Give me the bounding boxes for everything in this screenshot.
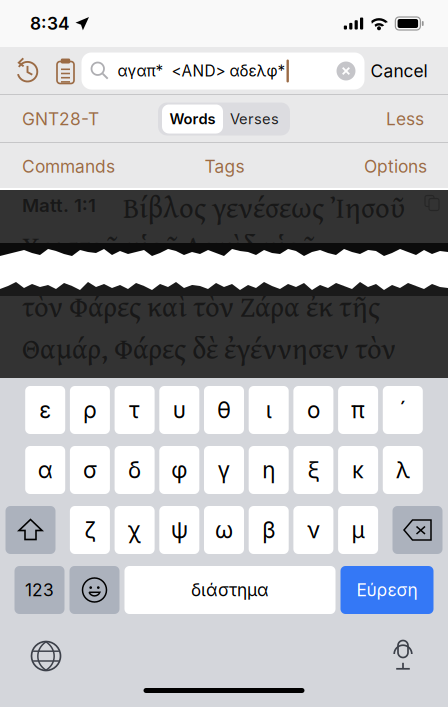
button[interactable]: ν bbox=[293, 506, 333, 554]
staticText: ε bbox=[39, 396, 51, 424]
button[interactable]: 123 bbox=[14, 566, 64, 614]
staticText: ο bbox=[307, 396, 320, 424]
staticText: 8:34 bbox=[30, 13, 70, 34]
button[interactable]: ε bbox=[25, 386, 65, 434]
staticText: Words bbox=[169, 110, 215, 128]
staticText: Matt. 1:1 bbox=[22, 194, 96, 217]
button[interactable]: μ bbox=[338, 506, 378, 554]
staticText: λ bbox=[396, 456, 410, 484]
button[interactable]: Words bbox=[162, 104, 223, 133]
button[interactable]: χ bbox=[115, 506, 155, 554]
button[interactable]: Shift bbox=[5, 506, 55, 554]
button[interactable]: ´ bbox=[383, 386, 423, 434]
staticText: β bbox=[262, 516, 275, 544]
button[interactable]: κ bbox=[338, 446, 378, 494]
button[interactable]: Search history bbox=[5, 47, 49, 94]
staticText: Less bbox=[386, 108, 424, 129]
button[interactable]: ι bbox=[249, 386, 289, 434]
staticText: δ bbox=[128, 456, 141, 484]
staticText: Εύρεση bbox=[356, 579, 417, 600]
staticText: διάστημα bbox=[191, 579, 269, 600]
staticText: σ bbox=[83, 456, 97, 484]
staticText: χ bbox=[128, 516, 141, 544]
staticText: ρ bbox=[83, 396, 97, 424]
button[interactable]: τ bbox=[115, 386, 155, 434]
staticText: α bbox=[38, 456, 53, 484]
button[interactable]: δ bbox=[115, 446, 155, 494]
button[interactable]: GNT28-T bbox=[18, 95, 103, 142]
button[interactable]: π bbox=[338, 386, 378, 434]
staticText: 123 bbox=[25, 579, 54, 600]
button[interactable]: Dictate bbox=[372, 634, 434, 678]
staticText: ω bbox=[215, 516, 233, 544]
staticText: ´ bbox=[399, 396, 406, 424]
button[interactable]: Tags bbox=[157, 143, 292, 190]
button[interactable]: Cancel bbox=[364, 47, 433, 94]
staticText: ζ bbox=[84, 516, 95, 544]
staticText: αγαπ* <AND> αδελφ* bbox=[117, 62, 285, 80]
staticText: μ bbox=[352, 516, 365, 544]
button[interactable]: ω bbox=[204, 506, 244, 554]
button[interactable]: Verses bbox=[223, 104, 286, 133]
staticText: Options bbox=[364, 156, 427, 177]
staticText: θ bbox=[217, 396, 231, 424]
staticText: Χριστοῦ υἱοῦ Δαυὶδ υἱοῦ bbox=[22, 225, 316, 267]
button[interactable]: υ bbox=[159, 386, 199, 434]
button[interactable]: Emoji bbox=[69, 566, 119, 614]
button[interactable]: Next keyboard bbox=[15, 634, 77, 678]
staticText: τ bbox=[129, 396, 140, 424]
button[interactable]: γ bbox=[204, 446, 244, 494]
button[interactable]: ρ bbox=[70, 386, 110, 434]
staticText: η bbox=[262, 456, 275, 484]
button[interactable]: ο bbox=[293, 386, 333, 434]
button[interactable]: ξ bbox=[293, 446, 333, 494]
staticText: τὸν Φάρες καὶ τὸν Ζάρα ἐκ τῆς bbox=[22, 285, 380, 327]
staticText: ν bbox=[307, 516, 320, 544]
button[interactable]: β bbox=[249, 506, 289, 554]
staticText: Tags bbox=[204, 156, 244, 177]
button[interactable]: ζ bbox=[70, 506, 110, 554]
staticText: Βίβλος γενέσεως Ἰησοῦ bbox=[123, 186, 405, 228]
button[interactable]: λ bbox=[383, 446, 423, 494]
staticText: ι bbox=[266, 396, 272, 424]
staticText: γ bbox=[217, 456, 230, 484]
staticText: Cancel bbox=[370, 60, 427, 81]
button[interactable]: φ bbox=[159, 446, 199, 494]
staticText: Commands bbox=[22, 156, 115, 177]
button[interactable]: η bbox=[249, 446, 289, 494]
button[interactable]: θ bbox=[204, 386, 244, 434]
button[interactable]: ψ bbox=[159, 506, 199, 554]
staticText: ξ bbox=[307, 456, 319, 484]
button[interactable]: Paste bbox=[49, 47, 81, 94]
button[interactable]: Εύρεση bbox=[340, 566, 433, 614]
button[interactable]: σ bbox=[70, 446, 110, 494]
staticText: ψ bbox=[171, 516, 188, 544]
button[interactable]: α bbox=[25, 446, 65, 494]
button[interactable]: Less bbox=[382, 95, 428, 142]
button[interactable]: Commands bbox=[22, 143, 157, 190]
staticText: Θαμάρ, Φάρες δὲ ἐγέννησεν τὸν bbox=[22, 327, 396, 369]
button[interactable]: Options bbox=[292, 143, 427, 190]
staticText: π bbox=[351, 396, 365, 424]
button[interactable]: διάστημα bbox=[124, 566, 335, 614]
staticText: κ bbox=[352, 456, 364, 484]
staticText: Verses bbox=[230, 110, 279, 128]
staticText: υ bbox=[173, 396, 186, 424]
staticText: φ bbox=[171, 456, 187, 484]
button[interactable]: Delete bbox=[392, 506, 442, 554]
staticText: GNT28-T bbox=[22, 108, 99, 129]
